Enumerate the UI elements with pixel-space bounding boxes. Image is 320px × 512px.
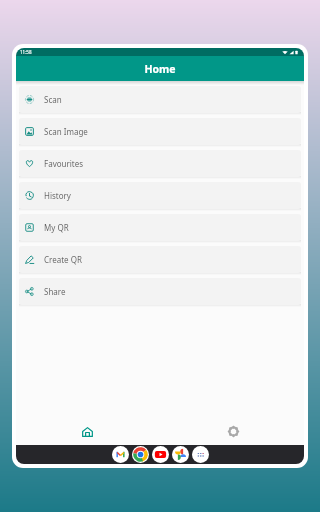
button[interactable]: History [19,182,301,209]
staticText: Favourites [44,158,84,169]
button[interactable]: Share [19,278,301,305]
staticText: Scan [44,94,62,105]
staticText: History [44,190,71,201]
button[interactable]: App [152,446,169,463]
button[interactable]: Scan [19,86,301,113]
button[interactable]: Settings [203,420,263,445]
staticText: Home [144,62,176,76]
staticText: 11:58 [20,49,32,55]
staticText: Share [44,286,66,297]
staticText: Create QR [44,254,82,265]
button[interactable]: Create QR [19,246,301,273]
button[interactable]: App [112,446,129,463]
button[interactable]: Home [57,420,117,445]
button[interactable]: Favourites [19,150,301,177]
button[interactable]: App [132,446,149,463]
staticText: My QR [44,222,69,233]
staticText: Scan Image [44,126,88,137]
button[interactable]: App [172,446,189,463]
button[interactable]: Scan Image [19,118,301,145]
button[interactable]: App [192,446,209,463]
button[interactable]: My QR [19,214,301,241]
